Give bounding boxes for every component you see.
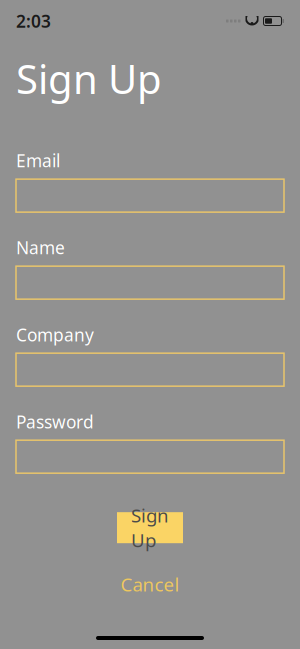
button[interactable]: Cancel bbox=[120, 574, 179, 594]
staticText: Company bbox=[16, 323, 94, 346]
staticText: Sign Up bbox=[131, 503, 169, 552]
staticText: Name bbox=[16, 236, 65, 259]
staticText: Password bbox=[16, 410, 94, 433]
staticText: 2:03 bbox=[16, 9, 51, 32]
button[interactable]: Sign Up bbox=[117, 512, 183, 543]
staticText: Email bbox=[16, 149, 60, 172]
staticText: Sign Up bbox=[16, 52, 162, 105]
staticText: Cancel bbox=[120, 572, 179, 597]
